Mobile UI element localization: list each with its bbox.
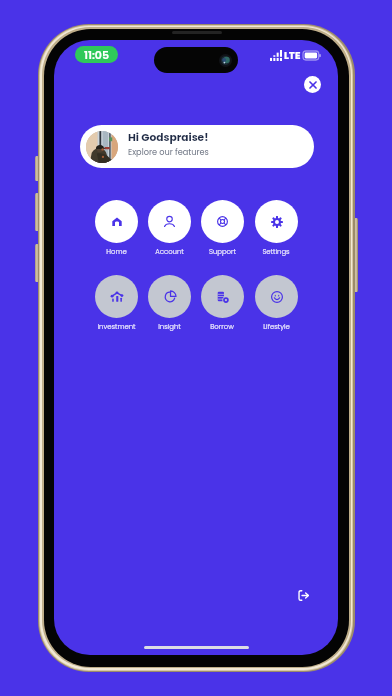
staticText: Settings — [262, 247, 290, 257]
button[interactable]: Log out — [290, 583, 315, 608]
staticText: Support — [209, 247, 236, 257]
staticText: Home — [106, 247, 127, 257]
staticText: Investment — [97, 322, 136, 332]
button[interactable]: Account — [143, 200, 195, 257]
button[interactable]: Insight — [143, 275, 195, 332]
staticText: Hi Godspraise! — [128, 130, 209, 145]
staticText: Explore our features — [128, 146, 209, 157]
staticText: Insight — [158, 322, 181, 332]
button[interactable]: Investment — [90, 275, 142, 332]
button[interactable]: Borrow — [196, 275, 248, 332]
button[interactable]: Settings — [250, 200, 302, 257]
staticText: Borrow — [210, 322, 234, 332]
staticText: 11:05 — [84, 47, 110, 62]
button[interactable]: Close — [304, 76, 321, 93]
button[interactable]: Home — [90, 200, 142, 257]
button[interactable]: Lifestyle — [250, 275, 302, 332]
staticText: Account — [155, 247, 184, 257]
button[interactable]: Hi Godspraise! — [80, 125, 314, 168]
staticText: Lifestyle — [263, 322, 290, 332]
button[interactable]: Support — [196, 200, 248, 257]
staticText: LTE — [284, 48, 301, 62]
